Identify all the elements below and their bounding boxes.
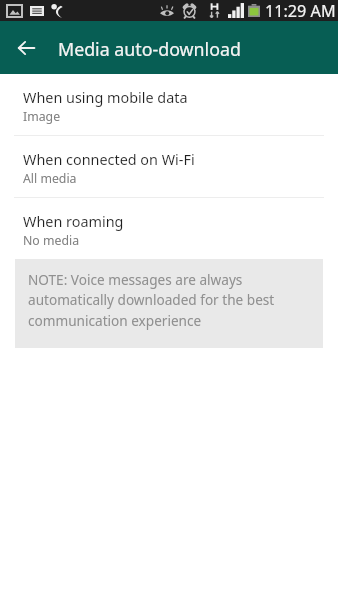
staticText: When using mobile data <box>23 88 188 108</box>
staticText: All media <box>23 170 77 187</box>
button[interactable]: Back <box>0 21 53 74</box>
staticText: NOTE: Voice messages are always automati… <box>28 270 275 330</box>
button[interactable]: When using mobile data <box>0 74 338 135</box>
staticText: When roaming <box>23 212 124 232</box>
staticText: When connected on Wi-Fi <box>23 150 195 170</box>
staticText: Media auto-download <box>58 37 241 61</box>
button[interactable]: When connected on Wi-Fi <box>0 136 338 197</box>
button[interactable]: When roaming <box>0 198 338 259</box>
staticText: Image <box>23 108 61 125</box>
staticText: No media <box>23 232 80 249</box>
staticText: 11:29 AM <box>265 0 336 21</box>
